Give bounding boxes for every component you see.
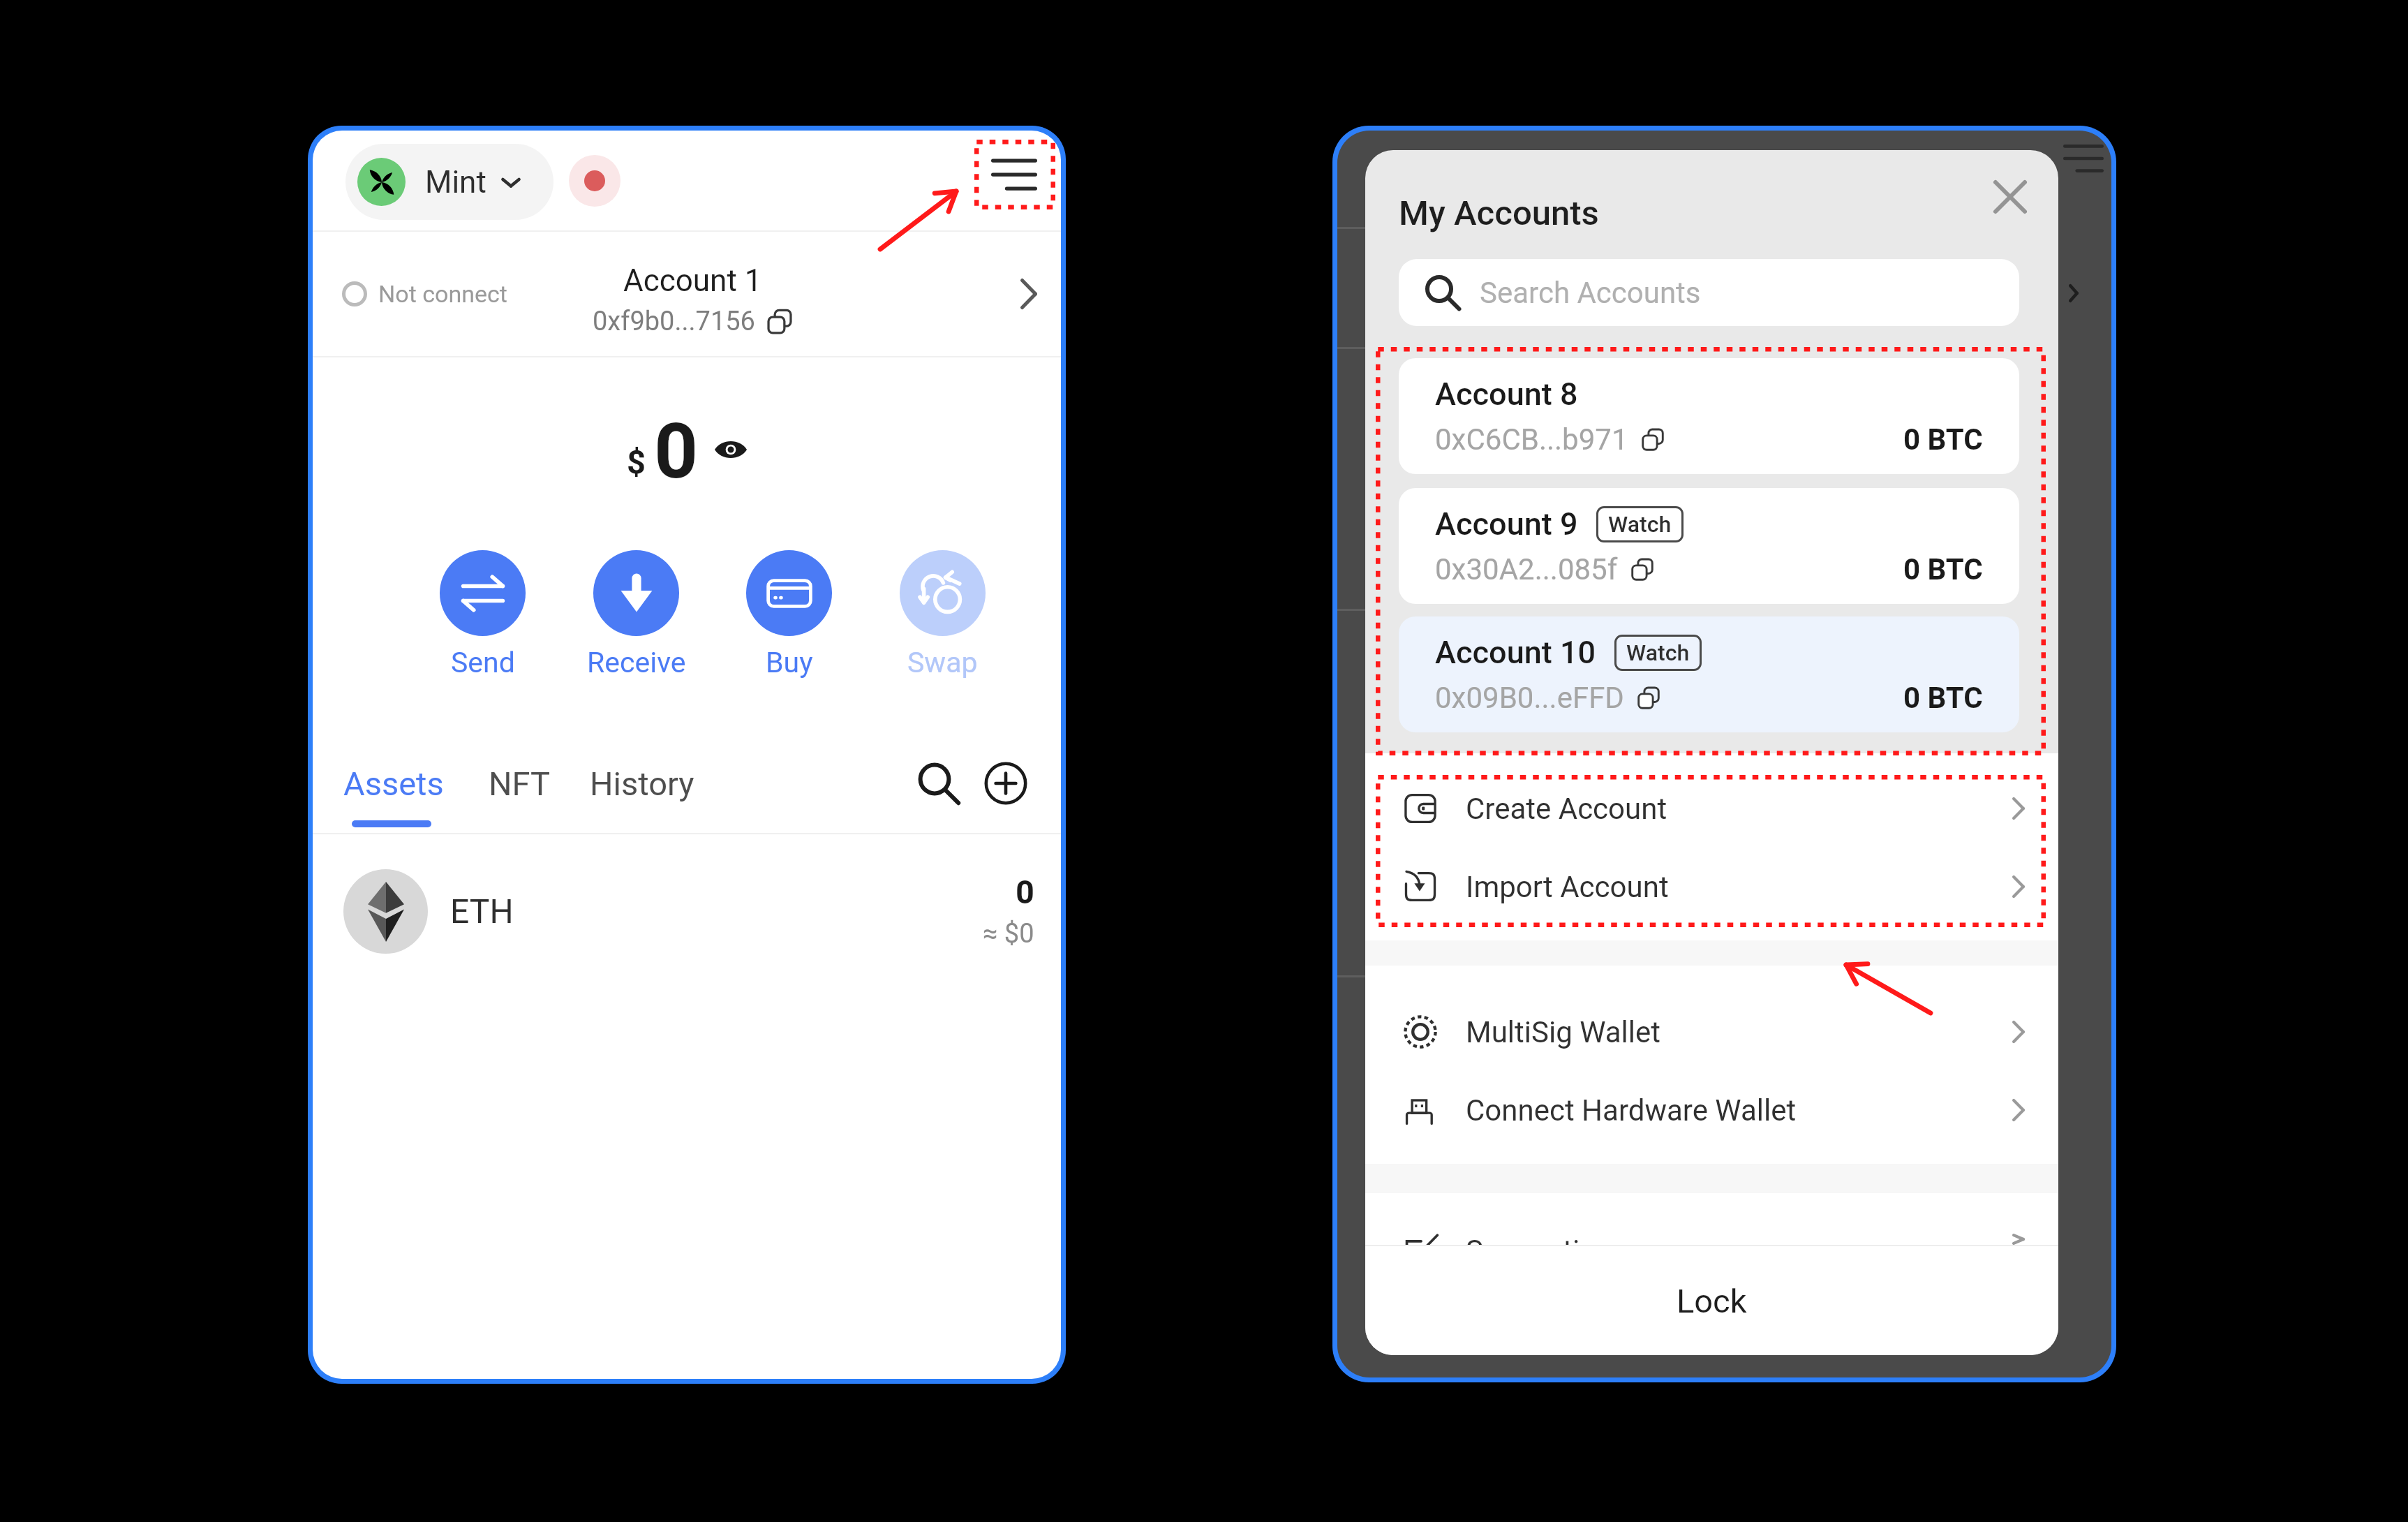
staticText: Account 8 <box>1435 376 1578 413</box>
staticText: MultiSig Wallet <box>1466 1015 1661 1049</box>
staticText: Search Accounts <box>1480 276 1701 310</box>
button[interactable]: NFT <box>486 758 553 810</box>
button[interactable]: Network status <box>569 155 620 207</box>
staticText: Account 9 <box>1435 505 1578 542</box>
button[interactable]: Close <box>1983 170 2037 224</box>
button[interactable]: Assets <box>341 758 447 810</box>
staticText: 0xC6CB...b971 <box>1435 422 1628 457</box>
staticText: Send <box>451 646 515 679</box>
button[interactable]: History <box>587 758 697 810</box>
button[interactable]: Search <box>909 753 969 813</box>
staticText: Watch <box>1626 640 1690 666</box>
button[interactable]: MultiSig Wallet <box>1365 998 2058 1066</box>
staticText: 0 BTC <box>1903 422 1983 457</box>
staticText: Mint <box>425 164 486 200</box>
button[interactable]: ETH <box>313 834 1061 988</box>
button[interactable]: Not connect <box>313 232 1061 356</box>
staticText: ETH <box>450 892 514 931</box>
staticText: My Accounts <box>1399 193 1599 233</box>
staticText: Watch <box>1608 511 1672 538</box>
staticText: Account 1 <box>623 263 762 299</box>
button[interactable]: Add token <box>976 753 1036 813</box>
button[interactable]: Buy <box>746 550 832 679</box>
staticText: ≈ $0 <box>983 918 1034 950</box>
button[interactable]: Account 8 <box>1399 358 2019 474</box>
button[interactable]: Import Account <box>1365 852 2058 921</box>
staticText: NFT <box>489 764 551 803</box>
staticText: $ <box>627 443 646 481</box>
button[interactable]: Account 9 <box>1399 488 2019 604</box>
staticText: Import Account <box>1466 870 1669 904</box>
staticText: 0 <box>654 406 699 496</box>
staticText: Receive <box>587 646 686 679</box>
staticText: Assets <box>343 764 444 803</box>
button[interactable]: Suggestion <box>1365 1234 2058 1245</box>
staticText: 0 BTC <box>1903 681 1983 715</box>
button[interactable]: Lock <box>1365 1246 2058 1355</box>
staticText: Connect Hardware Wallet <box>1466 1093 1797 1128</box>
button[interactable]: Account 10 <box>1399 616 2019 732</box>
staticText: Buy <box>766 646 813 679</box>
staticText: History <box>590 764 694 803</box>
staticText: 0 <box>1016 873 1034 911</box>
button[interactable]: Receive <box>593 550 679 679</box>
staticText: Lock <box>1677 1282 1747 1320</box>
staticText: Suggestion <box>1466 1234 1613 1245</box>
staticText: 0x30A2...085f <box>1435 552 1618 586</box>
staticText: Account 10 <box>1435 634 1596 671</box>
button[interactable]: Connect Hardware Wallet <box>1365 1076 2058 1144</box>
button[interactable]: Search Accounts <box>1399 259 2019 326</box>
button[interactable]: Swap <box>900 550 986 679</box>
staticText: Create Account <box>1466 792 1667 826</box>
staticText: 0x09B0...eFFD <box>1435 681 1624 715</box>
staticText: 0xf9b0...7156 <box>593 306 755 337</box>
staticText: Swap <box>907 646 978 679</box>
button[interactable]: Create Account <box>1365 774 2058 843</box>
button[interactable]: Menu <box>979 140 1049 209</box>
button[interactable]: Send <box>440 550 526 679</box>
staticText: 0 BTC <box>1903 552 1983 586</box>
staticText: Not connect <box>378 280 507 308</box>
button[interactable]: Mint <box>345 144 553 220</box>
